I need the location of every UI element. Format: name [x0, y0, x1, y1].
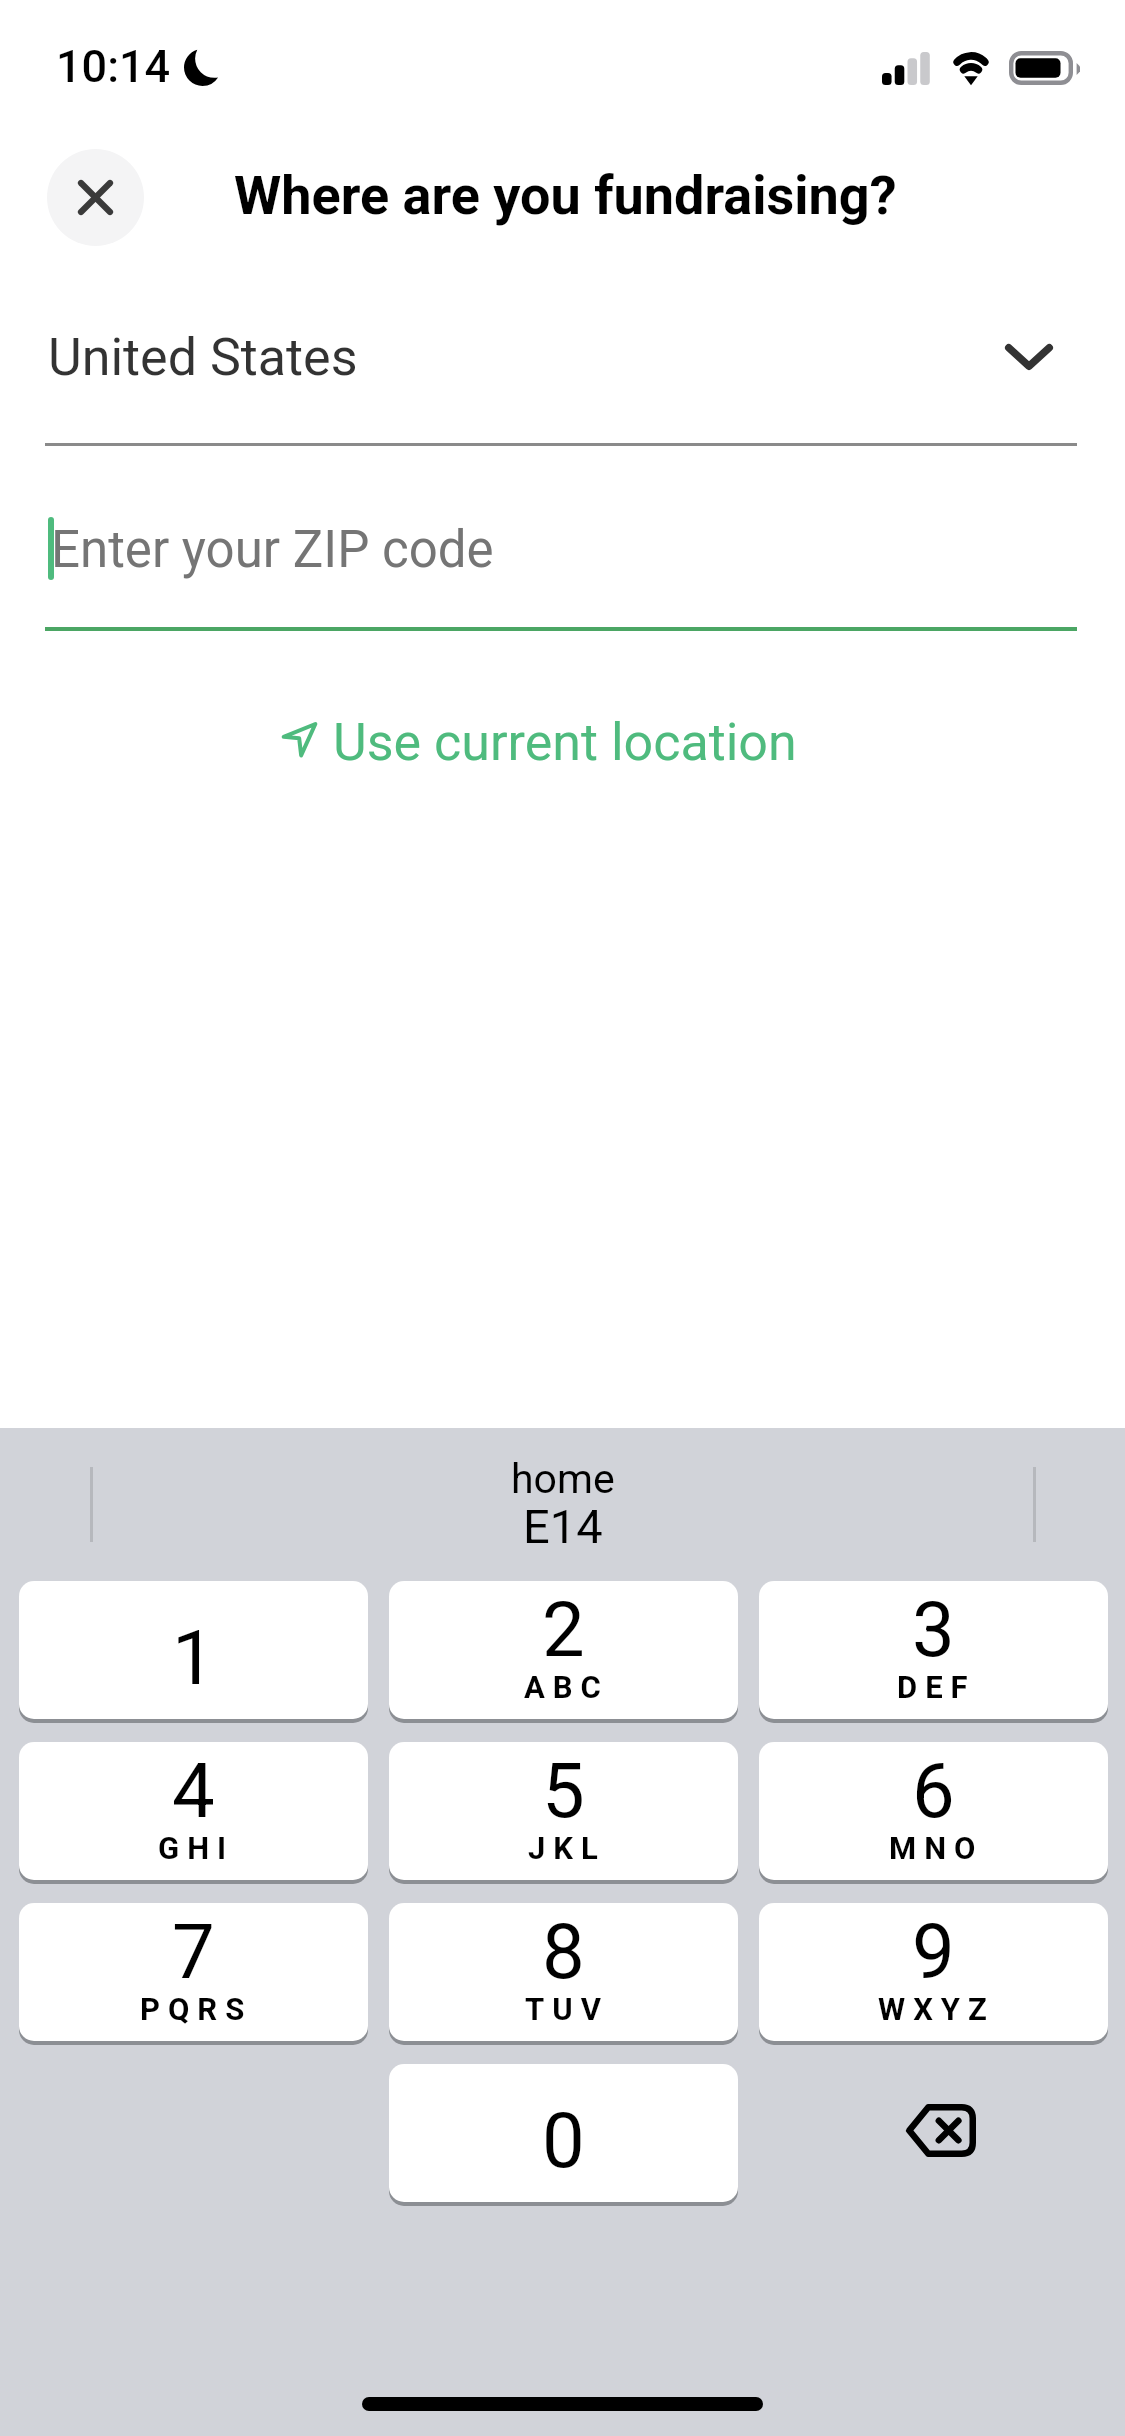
staticText: DEF	[897, 1669, 976, 1705]
button[interactable]: 7	[19, 1903, 368, 2041]
button[interactable]: 9	[759, 1903, 1108, 2041]
staticText: 7	[172, 1907, 215, 1996]
staticText: TUV	[525, 1991, 609, 2027]
staticText: 10:14	[56, 40, 171, 93]
staticText: 1	[172, 1613, 215, 1702]
button[interactable]: United States	[0, 300, 1125, 446]
button[interactable]: 6	[759, 1742, 1108, 1880]
staticText: 2	[542, 1585, 585, 1674]
staticText: MNO	[889, 1830, 984, 1866]
button[interactable]: Close	[47, 149, 144, 246]
staticText: GHI	[158, 1830, 235, 1866]
other: Choose country	[1005, 344, 1053, 370]
button[interactable]: 8	[389, 1903, 738, 2041]
button[interactable]: Delete	[759, 2064, 1108, 2202]
button[interactable]: 4	[19, 1742, 368, 1880]
staticText: 5	[542, 1746, 585, 1835]
staticText: Where are you fundraising?	[234, 164, 897, 227]
staticText: E14	[523, 1499, 603, 1554]
button[interactable]: 5	[389, 1742, 738, 1880]
staticText: 9	[912, 1907, 955, 1996]
staticText: WXYZ	[878, 1991, 995, 2027]
staticText: 4	[172, 1746, 215, 1835]
staticText: PQRS	[140, 1991, 253, 2027]
staticText: ABC	[524, 1669, 609, 1705]
button[interactable]: 3	[759, 1581, 1108, 1719]
button[interactable]: 2	[389, 1581, 738, 1719]
staticText: Use current location	[333, 712, 797, 773]
button[interactable]: Use current location	[262, 700, 810, 780]
staticText: 3	[912, 1585, 955, 1674]
staticText: 8	[542, 1907, 585, 1996]
staticText: home	[511, 1455, 615, 1503]
staticText: JKL	[528, 1830, 606, 1866]
staticText: Enter your ZIP code	[51, 520, 494, 580]
button[interactable]: 0	[389, 2064, 738, 2202]
staticText: United States	[48, 327, 358, 388]
button[interactable]: Enter your ZIP code	[0, 480, 1125, 631]
button[interactable]: 1	[19, 1581, 368, 1719]
staticText: 0	[542, 2096, 585, 2185]
staticText: 6	[912, 1746, 955, 1835]
